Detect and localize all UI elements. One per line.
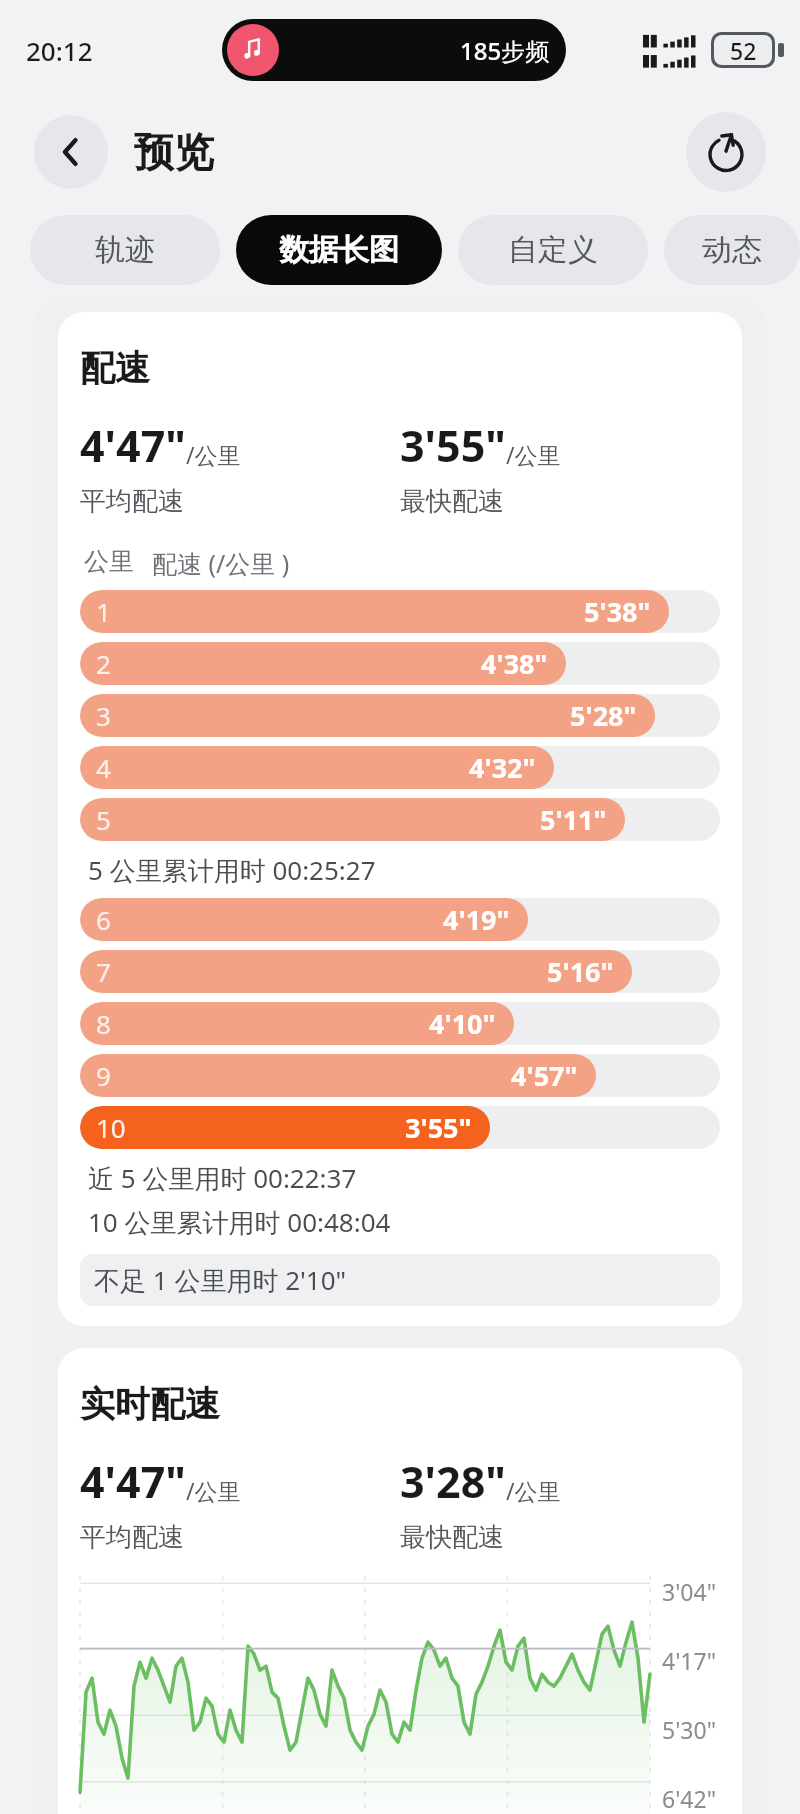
staticText: 3'55" [400, 416, 506, 475]
staticText: 配速 [80, 346, 150, 390]
staticText: 8 [96, 1006, 111, 1041]
staticText: 20:12 [26, 33, 93, 68]
staticText: 4'38" [481, 645, 548, 682]
button[interactable]: 动态 [664, 215, 800, 285]
staticText: 预览 [134, 127, 214, 177]
staticText: /公里 [506, 439, 561, 470]
staticText: 自定义 [508, 231, 598, 269]
staticText: 5'28" [570, 697, 637, 734]
button[interactable]: 返回 [34, 115, 108, 189]
staticText: 轨迹 [95, 231, 155, 269]
button[interactable]: 4 [80, 746, 720, 789]
button[interactable]: 5 [80, 798, 720, 841]
button[interactable]: 7 [80, 950, 720, 993]
staticText: 不足 1 公里用时 2'10" [94, 1262, 347, 1298]
staticText: 10 [96, 1110, 126, 1145]
staticText: 3'55" [405, 1109, 472, 1146]
button[interactable]: 1 [80, 590, 720, 633]
button[interactable]: 分享 [686, 112, 766, 192]
staticText: 实时配速 [80, 1382, 220, 1426]
button[interactable]: 9 [80, 1054, 720, 1097]
staticText: 最快配速 [400, 485, 504, 518]
staticText: 4'19" [443, 901, 510, 938]
staticText: 4 [96, 750, 111, 785]
staticText: 数据长图 [279, 231, 399, 269]
staticText: 5'30" [662, 1714, 717, 1745]
staticText: 5 公里累计用时 00:25:27 [88, 852, 376, 888]
staticText: 6 [96, 902, 111, 937]
staticText: 7 [96, 954, 111, 989]
button[interactable]: 数据长图 [236, 215, 442, 285]
staticText: 4'47" [80, 416, 186, 475]
staticText: 52 [730, 35, 757, 65]
button[interactable]: 轨迹 [30, 215, 220, 285]
staticText: 9 [96, 1058, 111, 1093]
staticText: 5 [96, 802, 111, 837]
staticText: 4'10" [429, 1005, 496, 1042]
staticText: 平均配速 [80, 485, 184, 518]
staticText: /公里 [186, 439, 241, 470]
staticText: 最快配速 [400, 1521, 504, 1554]
staticText: 5'38" [584, 593, 651, 630]
staticText: /公里 [186, 1475, 241, 1506]
staticText: 平均配速 [80, 1521, 184, 1554]
button[interactable]: 3 [80, 694, 720, 737]
staticText: 5'16" [547, 953, 614, 990]
staticText: 配速 (/公里 ) [152, 546, 290, 580]
staticText: 185步频 [460, 34, 550, 67]
staticText: 公里 [84, 546, 134, 577]
staticText: 3'04" [662, 1576, 717, 1607]
staticText: 4'32" [469, 749, 536, 786]
staticText: 近 5 公里用时 00:22:37 [88, 1160, 357, 1196]
button[interactable]: 2 [80, 642, 720, 685]
button[interactable]: 不足 1 公里用时 2'10" [80, 1254, 720, 1306]
button[interactable]: 8 [80, 1002, 720, 1045]
staticText: 3'28" [400, 1452, 506, 1511]
staticText: 1 [96, 594, 111, 629]
staticText: 2 [96, 646, 111, 681]
staticText: 5'11" [540, 801, 607, 838]
button[interactable]: 10 [80, 1106, 720, 1149]
staticText: 10 公里累计用时 00:48:04 [88, 1204, 391, 1240]
staticText: 4'57" [511, 1057, 578, 1094]
staticText: 3 [96, 698, 111, 733]
staticText: 6'42" [662, 1783, 717, 1814]
staticText: 4'17" [662, 1645, 717, 1676]
staticText: 4'47" [80, 1452, 186, 1511]
button[interactable]: 6 [80, 898, 720, 941]
staticText: /公里 [506, 1475, 561, 1506]
button[interactable]: 自定义 [458, 215, 648, 285]
staticText: 动态 [702, 231, 762, 269]
